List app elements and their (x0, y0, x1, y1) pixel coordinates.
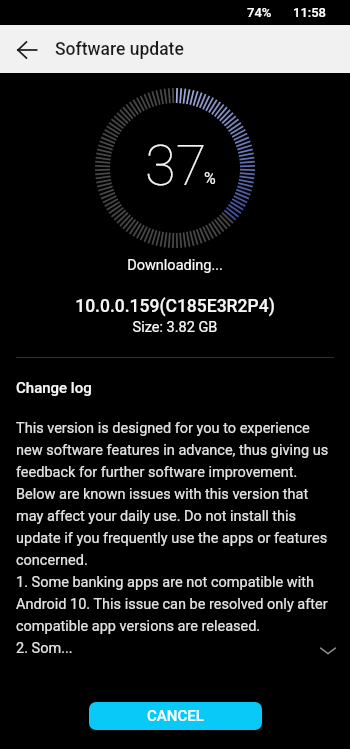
button[interactable]: CANCEL (89, 702, 262, 730)
staticText: 11:58 (293, 5, 326, 20)
staticText: % (204, 169, 216, 188)
staticText: 74% (247, 5, 272, 20)
staticText: Change log (16, 379, 92, 397)
button[interactable]: Back (7, 30, 47, 70)
staticText: 37 (145, 133, 207, 199)
staticText: CANCEL (147, 707, 204, 725)
staticText: Size: 3.82 GB (0, 319, 350, 336)
staticText: Software update (55, 39, 184, 60)
staticText: This version is designed for you to expe… (16, 420, 334, 657)
button[interactable]: This version is designed for you to expe… (0, 420, 350, 657)
staticText: 10.0.0.159(C185E3R2P4) (0, 296, 350, 317)
staticText: Downloading... (0, 257, 350, 274)
